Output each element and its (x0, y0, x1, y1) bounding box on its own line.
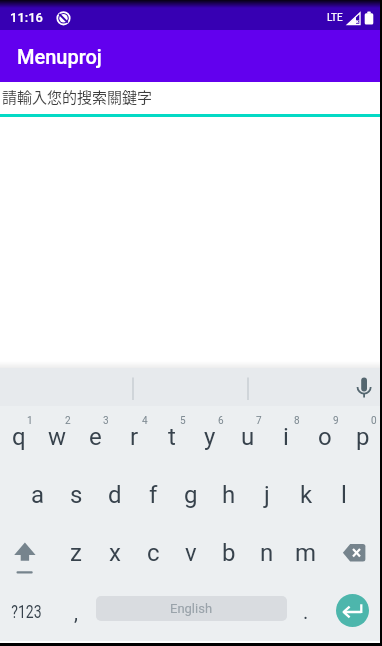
staticText: 4 (142, 415, 148, 427)
button[interactable]: t (153, 406, 191, 464)
button[interactable]: s (57, 464, 95, 522)
staticText: k (300, 481, 313, 509)
staticText: e (89, 423, 102, 451)
staticText: 0 (371, 415, 377, 427)
staticText: x (109, 539, 121, 567)
staticText: j (264, 481, 270, 509)
staticText: y (204, 423, 216, 451)
staticText: h (222, 481, 236, 509)
staticText: 1 (27, 415, 33, 427)
button[interactable]: g (172, 464, 210, 522)
button[interactable]: z (57, 522, 95, 580)
button[interactable]: j (248, 464, 286, 522)
button[interactable]: p (344, 406, 382, 464)
button[interactable]: ?123 (0, 580, 57, 638)
staticText: c (147, 539, 160, 567)
staticText: 8 (294, 415, 300, 427)
button[interactable] (336, 594, 369, 627)
button[interactable]: k (287, 464, 325, 522)
button[interactable]: f (134, 464, 172, 522)
staticText: s (70, 481, 83, 509)
staticText: v (185, 539, 197, 567)
button[interactable]: d (96, 464, 134, 522)
staticText: l (341, 481, 347, 509)
staticText: o (318, 423, 332, 451)
button[interactable]: y (191, 406, 229, 464)
staticText: g (184, 481, 198, 509)
staticText: 7 (256, 415, 262, 427)
staticText: 11:16 (10, 10, 44, 25)
button[interactable]: w (38, 406, 76, 464)
button[interactable] (0, 522, 57, 580)
staticText: . (303, 600, 309, 623)
button[interactable] (325, 522, 382, 580)
staticText: f (149, 481, 158, 509)
staticText: z (70, 539, 82, 567)
staticText: 5 (180, 415, 186, 427)
button[interactable]: l (325, 464, 363, 522)
button[interactable]: e (76, 406, 114, 464)
button[interactable]: 請輸入您的搜索關鍵字 (0, 82, 382, 117)
staticText: q (12, 423, 26, 451)
button[interactable]: r (115, 406, 153, 464)
staticText: t (168, 423, 176, 451)
button[interactable]: i (267, 406, 305, 464)
button[interactable]: x (96, 522, 134, 580)
staticText: n (260, 539, 274, 567)
staticText: 6 (218, 415, 224, 427)
button[interactable]: o (306, 406, 344, 464)
staticText: ?123 (11, 601, 42, 622)
button[interactable]: q (0, 406, 38, 464)
button[interactable]: , (57, 580, 95, 638)
button[interactable]: a (19, 464, 57, 522)
staticText: , (74, 601, 78, 624)
staticText: d (108, 481, 122, 509)
staticText: i (283, 423, 289, 451)
staticText: b (222, 539, 236, 567)
staticText: a (31, 481, 45, 509)
button[interactable]: . (287, 580, 325, 638)
button[interactable]: m (287, 522, 325, 580)
staticText: LTE (327, 12, 343, 24)
staticText: m (295, 539, 317, 567)
button[interactable] (350, 370, 380, 404)
button[interactable]: English (96, 596, 287, 621)
staticText: Menuproj (17, 45, 102, 68)
button[interactable]: u (229, 406, 267, 464)
staticText: 9 (333, 415, 339, 427)
staticText: w (48, 423, 67, 451)
button[interactable]: b (210, 522, 248, 580)
button[interactable]: v (172, 522, 210, 580)
staticText: English (170, 601, 213, 616)
button[interactable]: c (134, 522, 172, 580)
staticText: 請輸入您的搜索關鍵字 (2, 86, 153, 108)
staticText: p (356, 423, 370, 451)
staticText: 2 (65, 415, 71, 427)
staticText: u (241, 423, 255, 451)
button[interactable]: h (210, 464, 248, 522)
staticText: r (130, 423, 139, 451)
button[interactable]: n (248, 522, 286, 580)
staticText: 3 (103, 415, 109, 427)
